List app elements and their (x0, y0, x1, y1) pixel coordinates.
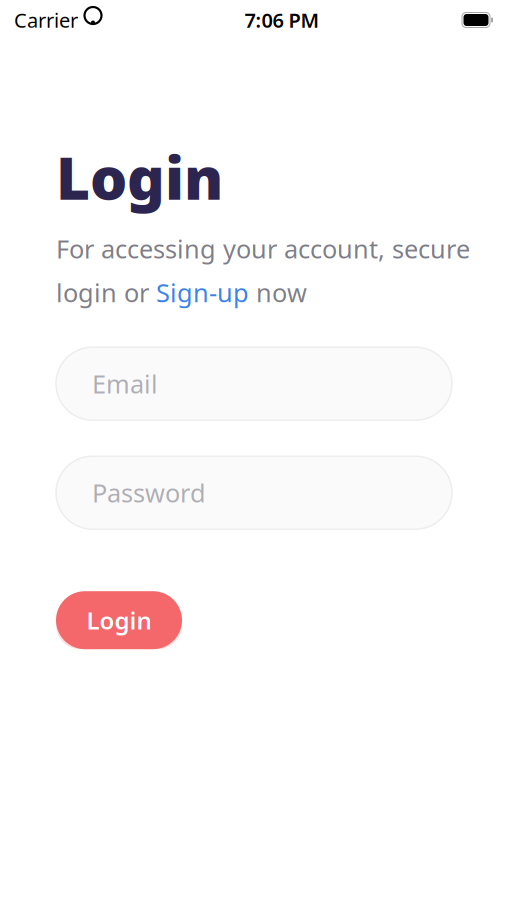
staticText: Login (56, 138, 223, 216)
staticText: Sign-up (156, 275, 249, 309)
staticText: now (249, 275, 307, 309)
button[interactable]: Login (56, 591, 182, 649)
staticText: 7:06 PM (244, 7, 319, 33)
staticText: Password (92, 476, 206, 509)
staticText: For accessing your account, secure (56, 232, 470, 265)
button[interactable]: Sign-up (156, 275, 249, 309)
staticText: login or (56, 275, 156, 309)
staticText: Email (92, 367, 158, 400)
staticText: Login (86, 604, 151, 636)
staticText: Carrier (14, 7, 78, 33)
